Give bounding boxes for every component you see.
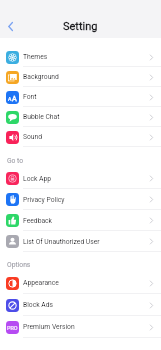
staticText: A bbox=[12, 94, 17, 102]
button[interactable]: A bbox=[0, 87, 161, 107]
button[interactable]: Privacy Policy bbox=[0, 189, 161, 210]
staticText: A bbox=[8, 96, 12, 102]
staticText: Privacy Policy bbox=[23, 196, 65, 204]
staticText: Background bbox=[23, 73, 59, 81]
staticText: Feedback bbox=[23, 217, 53, 225]
button[interactable]: Sound bbox=[0, 127, 161, 147]
staticText: Options bbox=[7, 261, 31, 269]
staticText: PRO bbox=[7, 325, 18, 331]
staticText: Setting bbox=[63, 20, 98, 33]
button[interactable]: Bubble Chat bbox=[0, 107, 161, 127]
button[interactable]: Themes bbox=[0, 47, 161, 67]
button[interactable]: Appearance bbox=[0, 272, 161, 294]
button[interactable]: Lock App bbox=[0, 168, 161, 189]
button[interactable]: PRO bbox=[0, 316, 161, 338]
staticText: Sound bbox=[23, 133, 43, 141]
staticText: Block Ads bbox=[23, 301, 54, 309]
staticText: Go to bbox=[7, 157, 24, 165]
staticText: Appearance bbox=[23, 279, 59, 287]
button[interactable]: Block Ads bbox=[0, 294, 161, 316]
staticText: Lock App bbox=[23, 175, 52, 183]
staticText: List Of Unauthorized User bbox=[23, 238, 100, 246]
staticText: Premium Version bbox=[23, 323, 75, 331]
staticText: Themes bbox=[23, 53, 48, 61]
staticText: Font bbox=[23, 93, 37, 101]
button[interactable]: List Of Unauthorized User bbox=[0, 231, 161, 252]
button[interactable]: Feedback bbox=[0, 210, 161, 231]
button[interactable]: Background bbox=[0, 67, 161, 87]
staticText: Bubble Chat bbox=[23, 113, 60, 121]
button[interactable]: Back bbox=[2, 18, 18, 34]
